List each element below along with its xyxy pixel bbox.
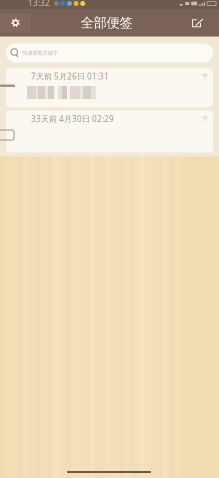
staticText: 13:32: [28, 0, 50, 8]
button[interactable]: New note: [183, 13, 211, 32]
staticText: 33天前 4月30日 02:29: [31, 113, 114, 124]
button[interactable]: 快速搜索关键字: [6, 43, 213, 62]
button[interactable]: 7天前 5月26日 01:31: [6, 68, 213, 107]
staticText: 全部便签: [80, 15, 132, 31]
button[interactable]: Settings: [0, 13, 31, 32]
staticText: 快速搜索关键字: [22, 50, 57, 56]
staticText: 7天前 5月26日 01:31: [31, 71, 109, 82]
button[interactable]: 33天前 4月30日 02:29: [6, 110, 213, 152]
